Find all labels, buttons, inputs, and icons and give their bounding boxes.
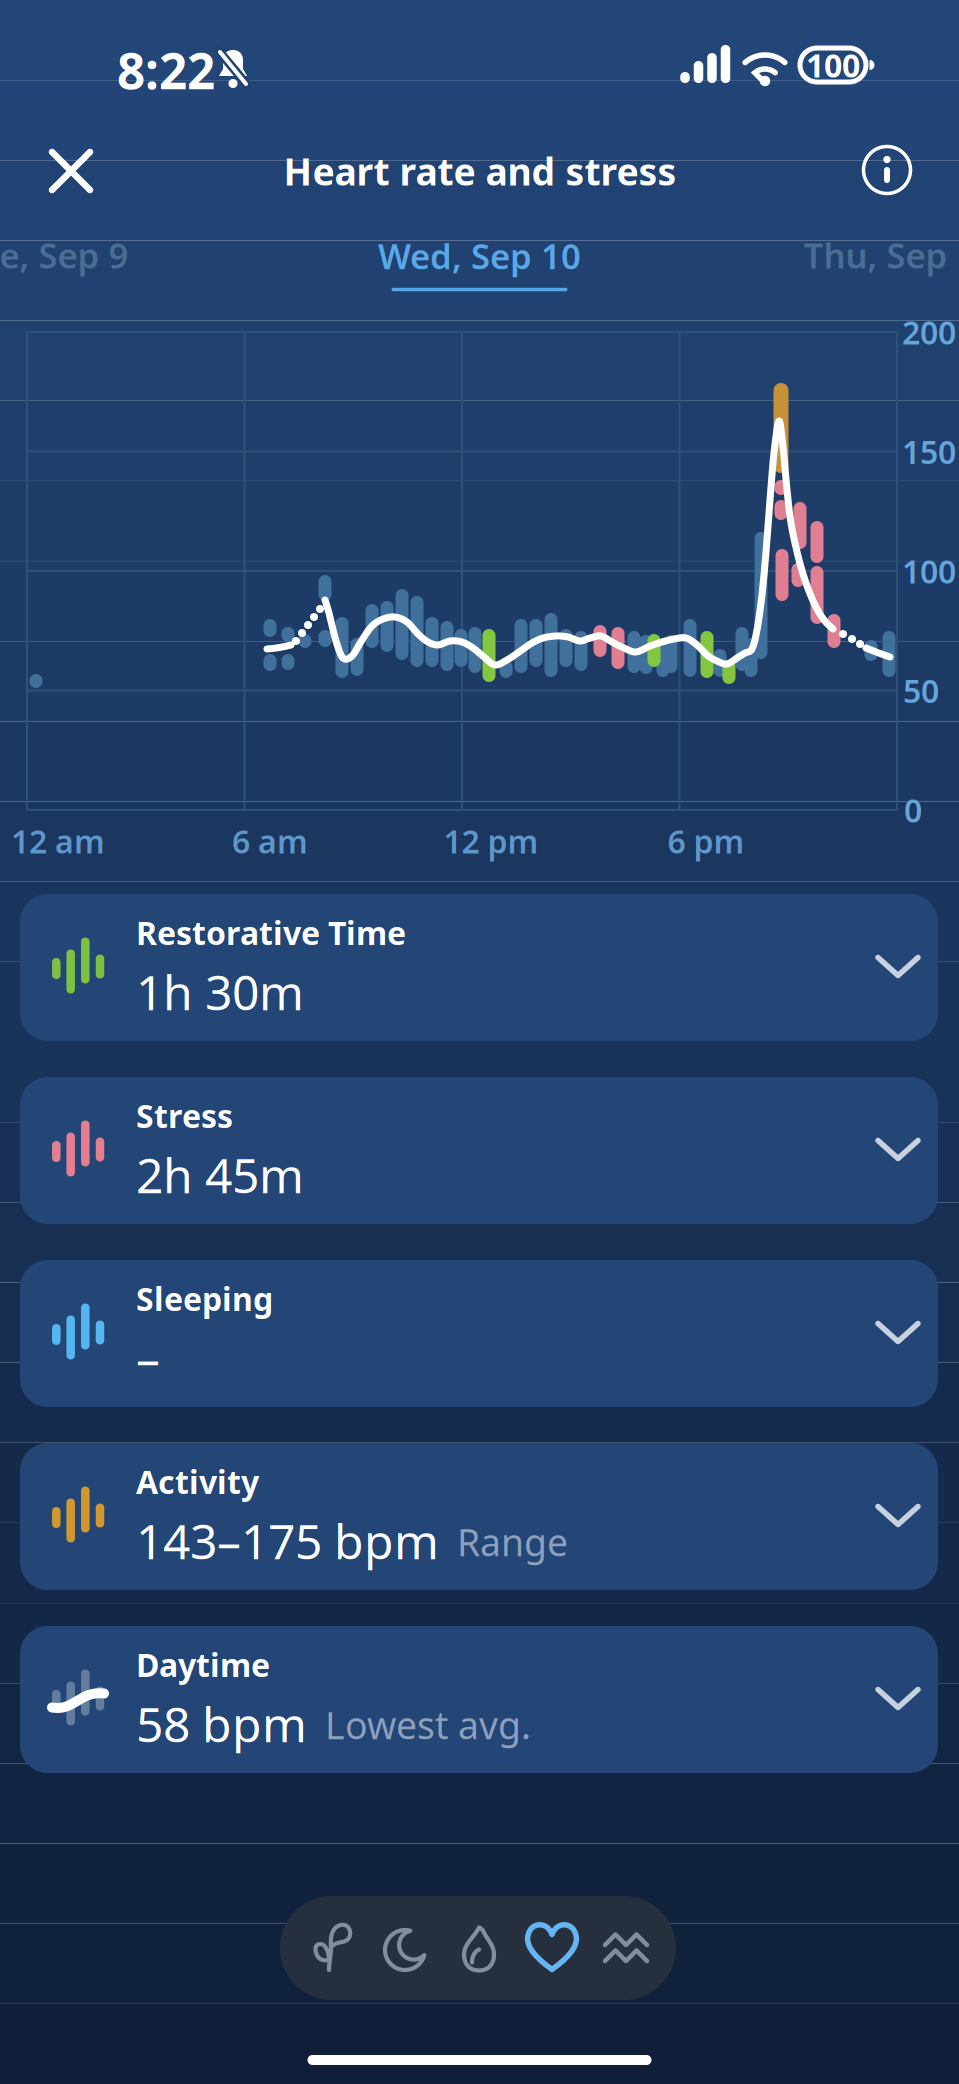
staticText: Sleeping (136, 1277, 273, 1320)
staticText: 6 am (232, 820, 308, 862)
staticText: 150 (902, 430, 956, 473)
staticText: 12 pm (443, 820, 538, 862)
staticText: – (136, 1326, 160, 1390)
button[interactable]: Close (52, 152, 90, 190)
button[interactable]: Activity (20, 1443, 938, 1590)
button[interactable]: Heart rate (527, 1921, 577, 1970)
button[interactable]: Tue, Sep 9 (0, 232, 128, 278)
staticText: Thu, Sep 11 (803, 232, 959, 278)
staticText: Stress (136, 1094, 233, 1137)
staticText: Tue, Sep 9 (0, 232, 128, 278)
button[interactable]: Restorative Time (20, 894, 938, 1041)
staticText: Daytime (136, 1643, 270, 1686)
button[interactable]: Info (863, 146, 911, 194)
staticText: Activity (136, 1460, 259, 1503)
staticText: 200 (902, 311, 956, 353)
button[interactable]: Vitals (314, 1924, 352, 1972)
staticText: 100 (902, 550, 956, 592)
staticText: Restorative Time (136, 911, 406, 954)
staticText: 6 pm (667, 820, 744, 862)
staticText: 0 (904, 789, 922, 831)
staticText: 50 (903, 669, 939, 712)
staticText: Wed, Sep 10 (378, 233, 581, 279)
button[interactable]: Daytime (20, 1626, 938, 1773)
button[interactable]: Wed, Sep 10 (378, 233, 581, 291)
button[interactable]: Activity (462, 1926, 496, 1971)
staticText: 12 am (11, 820, 105, 862)
staticText: Lowest avg. (325, 1700, 531, 1750)
button[interactable]: Thu, Sep 11 (803, 232, 959, 278)
staticText: Heart rate and stress (283, 146, 676, 196)
button[interactable]: Stress (20, 1077, 938, 1224)
staticText: 8:22 (117, 37, 215, 103)
staticText: Range (457, 1517, 568, 1567)
staticText: 143–175 bpm (136, 1509, 439, 1573)
staticText: 100 (806, 44, 860, 86)
button[interactable]: Sleep (384, 1926, 428, 1974)
staticText: 1h 30m (136, 960, 304, 1024)
button[interactable]: Stress (605, 1934, 647, 1962)
staticText: 2h 45m (136, 1143, 304, 1207)
button[interactable]: Sleeping (20, 1260, 938, 1407)
staticText: 58 bpm (136, 1692, 307, 1756)
